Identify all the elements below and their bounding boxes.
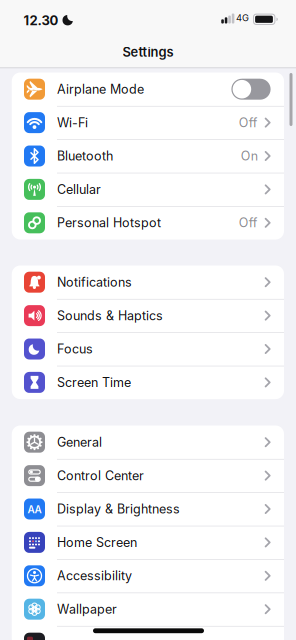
button[interactable]: Focus <box>12 332 284 366</box>
staticText: Notifications <box>57 275 132 290</box>
button[interactable]: Home Screen <box>12 526 284 559</box>
staticText: Settings <box>122 44 173 60</box>
staticText: Focus <box>57 341 93 357</box>
staticText: Personal Hotspot <box>57 215 161 230</box>
button[interactable]: Personal Hotspot <box>12 206 284 239</box>
staticText: Cellular <box>57 182 101 197</box>
button[interactable]: Cellular <box>12 173 284 206</box>
staticText: 12.30 <box>23 13 58 28</box>
staticText: Sounds & Haptics <box>57 308 163 323</box>
staticText: On <box>241 148 258 164</box>
button[interactable]: Airplane Mode <box>12 72 284 106</box>
button[interactable]: AA <box>12 492 284 526</box>
button[interactable]: Notifications <box>12 265 284 299</box>
staticText: Control Center <box>57 468 144 483</box>
staticText: Home Screen <box>57 535 137 550</box>
staticText: Accessibility <box>57 568 132 583</box>
staticText: Airplane Mode <box>57 82 144 97</box>
staticText: Off <box>239 115 258 130</box>
staticText: Screen Time <box>57 375 131 390</box>
button[interactable]: Sounds & Haptics <box>12 299 284 332</box>
button[interactable]: Accessibility <box>12 559 284 592</box>
staticText: AA <box>27 503 41 516</box>
button[interactable]: Wallpaper <box>12 592 284 626</box>
staticText: Wi-Fi <box>57 115 88 130</box>
staticText: Bluetooth <box>57 148 113 164</box>
button[interactable]: General <box>12 425 284 459</box>
button[interactable]: Bluetooth <box>12 139 284 173</box>
button[interactable]: Control Center <box>12 459 284 492</box>
staticText: Off <box>239 215 258 230</box>
staticText: Wallpaper <box>57 602 117 617</box>
staticText: 4G <box>236 12 249 23</box>
button[interactable]: Screen Time <box>12 366 284 399</box>
staticText: General <box>57 435 102 450</box>
staticText: Display & Brightness <box>57 501 180 517</box>
button[interactable]: Wi-Fi <box>12 106 284 139</box>
